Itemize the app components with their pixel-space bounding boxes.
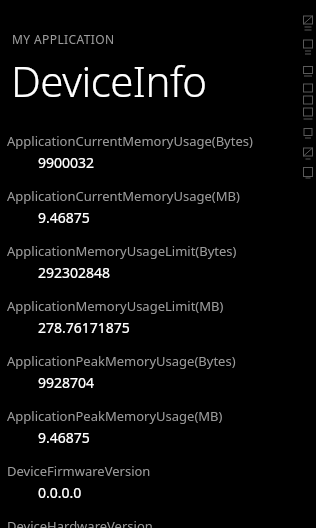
staticText: DeviceInfo	[11, 52, 207, 109]
staticText: 9900032	[38, 153, 95, 172]
button[interactable]: MY APPLICATION	[0, 31, 316, 47]
other: Status bar	[301, 14, 315, 184]
button[interactable]: ApplicationMemoryUsageLimit(MB)	[0, 297, 316, 337]
staticText: 278.76171875	[38, 318, 130, 337]
staticText: DeviceFirmwareVersion	[7, 462, 151, 480]
button[interactable]: DeviceInfo	[0, 52, 316, 109]
button[interactable]: ApplicationPeakMemoryUsage(MB)	[0, 407, 316, 447]
staticText: 9928704	[38, 373, 95, 392]
button[interactable]: ApplicationPeakMemoryUsage(Bytes)	[0, 352, 316, 392]
button[interactable]: DeviceFirmwareVersion	[0, 462, 316, 502]
button[interactable]: ApplicationMemoryUsageLimit(Bytes)	[0, 242, 316, 282]
staticText: 9.46875	[38, 208, 90, 227]
staticText: ApplicationCurrentMemoryUsage(MB)	[7, 187, 240, 205]
staticText: ApplicationMemoryUsageLimit(MB)	[7, 297, 224, 315]
button[interactable]: DeviceHardwareVersion	[0, 517, 316, 528]
button[interactable]: ApplicationCurrentMemoryUsage(Bytes)	[0, 132, 316, 172]
staticText: ApplicationMemoryUsageLimit(Bytes)	[7, 242, 237, 260]
staticText: ApplicationPeakMemoryUsage(MB)	[7, 407, 223, 425]
staticText: MY APPLICATION	[12, 31, 115, 47]
staticText: ApplicationPeakMemoryUsage(Bytes)	[7, 352, 236, 370]
button[interactable]: ApplicationCurrentMemoryUsage(MB)	[0, 187, 316, 227]
staticText: 292302848	[38, 263, 111, 282]
staticText: 0.0.0.0	[38, 483, 82, 502]
staticText: DeviceHardwareVersion	[7, 517, 153, 528]
staticText: 9.46875	[38, 428, 90, 447]
staticText: ApplicationCurrentMemoryUsage(Bytes)	[7, 132, 253, 150]
